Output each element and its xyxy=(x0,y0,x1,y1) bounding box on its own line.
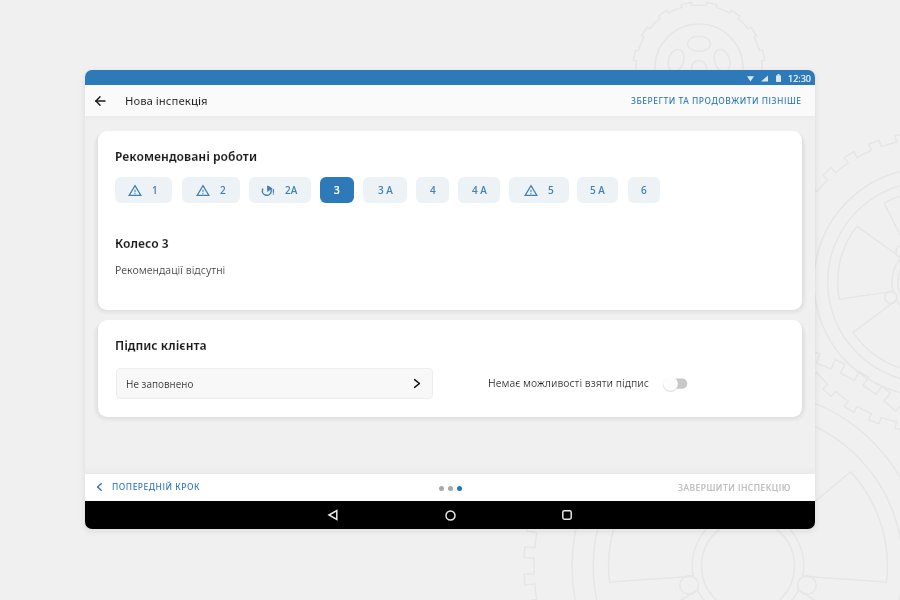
staticText: 1 xyxy=(152,183,158,197)
button[interactable]: 5 A xyxy=(577,177,618,203)
staticText: Рекомендації відсутні xyxy=(115,263,226,277)
staticText: ЗБЕРЕГТИ ТА ПРОДОВЖИТИ ПІЗНІШЕ xyxy=(631,95,802,107)
button[interactable]: Не заповнено xyxy=(116,368,433,399)
staticText: Нова інспекція xyxy=(125,93,208,108)
button[interactable]: 3 A xyxy=(363,177,407,203)
staticText: Не заповнено xyxy=(126,377,194,391)
staticText: 5 A xyxy=(590,183,605,197)
button[interactable]: ПОПЕРЕДНІЙ КРОК xyxy=(93,478,204,496)
button[interactable]: Back xyxy=(323,505,343,525)
staticText: Колесо 3 xyxy=(115,235,169,251)
staticText: Підпис клієнта xyxy=(115,337,207,353)
button[interactable]: ЗБЕРЕГТИ ТА ПРОДОВЖИТИ ПІЗНІШЕ xyxy=(627,91,806,111)
staticText: Немає можливості взяти підпис xyxy=(488,376,649,390)
staticText: 3 xyxy=(334,183,340,197)
button[interactable]: Recents xyxy=(557,505,577,525)
button[interactable]: 4 xyxy=(416,177,449,203)
staticText: 4 A xyxy=(472,183,487,197)
button[interactable]: 6 xyxy=(628,177,660,203)
staticText: 2 xyxy=(220,183,226,197)
button[interactable]: 3 xyxy=(320,177,354,203)
staticText: ПОПЕРЕДНІЙ КРОК xyxy=(112,481,200,493)
button[interactable]: 1 xyxy=(115,177,172,203)
button[interactable]: 2 xyxy=(182,177,240,203)
button[interactable]: 4 A xyxy=(458,177,500,203)
staticText: 4 xyxy=(430,183,436,197)
button[interactable]: Home xyxy=(440,505,460,525)
staticText: ЗАВЕРШИТИ ІНСПЕКЦІЮ xyxy=(678,482,791,494)
button[interactable]: Немає можливості взяти підпис xyxy=(484,371,693,395)
staticText: 12:30 xyxy=(788,72,812,84)
staticText: 6 xyxy=(641,183,647,197)
button[interactable]: Back xyxy=(89,90,111,112)
staticText: 2A xyxy=(285,183,298,197)
button[interactable]: ЗАВЕРШИТИ ІНСПЕКЦІЮ xyxy=(674,478,795,498)
staticText: Рекомендовані роботи xyxy=(115,148,258,164)
staticText: 5 xyxy=(548,183,554,197)
staticText: 3 A xyxy=(378,183,393,197)
button[interactable]: 2A xyxy=(249,177,311,203)
button[interactable]: 5 xyxy=(509,177,569,203)
